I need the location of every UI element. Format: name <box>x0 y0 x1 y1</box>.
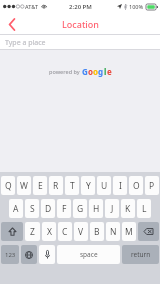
staticText: I <box>119 180 122 192</box>
button[interactable]: Y <box>81 176 95 195</box>
staticText: Type a place <box>5 38 46 48</box>
staticText: Location <box>62 18 99 30</box>
staticText: return <box>131 250 151 259</box>
button[interactable]: P <box>145 176 159 195</box>
staticText: P <box>149 180 155 192</box>
button[interactable]: G <box>73 199 87 218</box>
button[interactable]: O <box>129 176 143 195</box>
button[interactable]: Back <box>0 13 24 35</box>
staticText: AT&T <box>25 3 39 10</box>
staticText: Q <box>5 180 12 192</box>
staticText: G <box>77 203 84 215</box>
staticText: F <box>62 203 67 215</box>
button[interactable]: E <box>33 176 47 195</box>
staticText: e <box>107 66 112 77</box>
button[interactable]: N <box>106 222 120 241</box>
staticText: Z <box>30 226 35 238</box>
staticText: C <box>62 226 68 238</box>
staticText: G <box>82 66 88 77</box>
button[interactable]: L <box>137 199 151 218</box>
staticText: D <box>45 203 52 215</box>
button[interactable]: M <box>122 222 136 241</box>
button[interactable]: Backspace <box>138 222 159 241</box>
staticText: X <box>47 226 52 238</box>
staticText: 123 <box>5 251 16 259</box>
staticText: H <box>93 203 100 215</box>
staticText: Y <box>86 180 91 192</box>
button[interactable]: Z <box>25 222 40 241</box>
button[interactable]: W <box>17 176 31 195</box>
button[interactable]: Dictation <box>39 245 55 264</box>
button[interactable]: D <box>41 199 55 218</box>
staticText: V <box>78 226 84 238</box>
button[interactable]: space <box>57 245 120 264</box>
staticText: B <box>94 226 100 238</box>
button[interactable]: K <box>121 199 135 218</box>
button[interactable]: X <box>42 222 56 241</box>
button[interactable]: J <box>105 199 119 218</box>
staticText: R <box>53 180 59 192</box>
button[interactable]: Change keyboard <box>21 245 37 264</box>
button[interactable]: 123 <box>1 245 19 264</box>
button[interactable]: H <box>89 199 103 218</box>
staticText: o <box>93 66 98 77</box>
staticText: K <box>125 203 131 215</box>
button[interactable]: R <box>49 176 63 195</box>
staticText: J <box>111 203 114 215</box>
staticText: space <box>80 250 98 259</box>
button[interactable]: T <box>65 176 79 195</box>
button[interactable]: I <box>113 176 127 195</box>
staticText: powered by <box>49 68 82 75</box>
button[interactable]: F <box>57 199 71 218</box>
staticText: 100% <box>129 3 144 10</box>
button[interactable]: B <box>90 222 104 241</box>
staticText: T <box>70 180 75 192</box>
staticText: U <box>101 180 108 192</box>
button[interactable]: A <box>9 199 23 218</box>
button[interactable]: S <box>25 199 39 218</box>
button[interactable]: Q <box>1 176 15 195</box>
button[interactable]: U <box>97 176 111 195</box>
staticText: g <box>98 66 104 77</box>
staticText: 2:20 PM <box>69 3 92 11</box>
staticText: L <box>142 203 147 215</box>
button[interactable]: return <box>122 245 159 264</box>
staticText: O <box>133 180 140 192</box>
button[interactable]: Type a place <box>0 35 160 50</box>
staticText: E <box>38 180 43 192</box>
staticText: N <box>110 226 117 238</box>
staticText: S <box>30 203 35 215</box>
staticText: l <box>104 66 107 77</box>
staticText: o <box>88 66 93 77</box>
staticText: W <box>20 180 28 192</box>
staticText: M <box>125 226 133 238</box>
button[interactable]: Shift <box>1 222 23 241</box>
button[interactable]: V <box>74 222 88 241</box>
staticText: A <box>13 203 19 215</box>
button[interactable]: C <box>58 222 72 241</box>
